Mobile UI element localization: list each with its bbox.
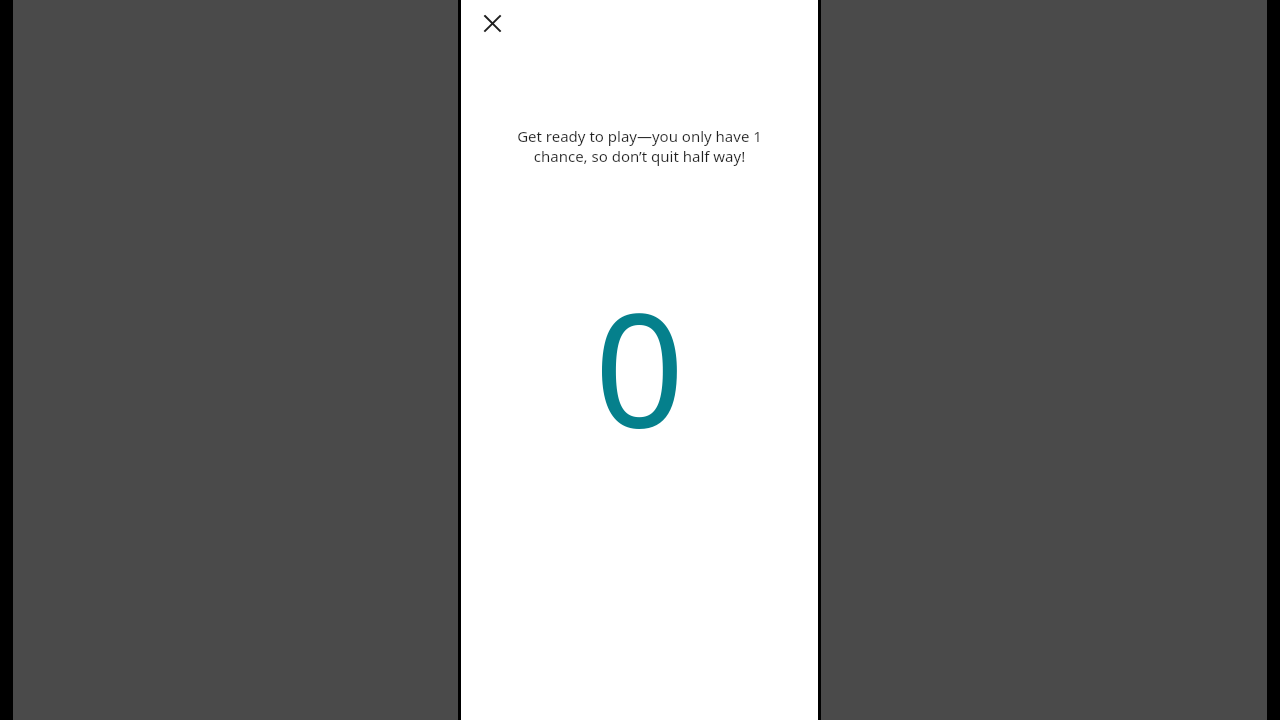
staticText: 0 xyxy=(594,258,685,464)
button[interactable]: Close xyxy=(470,1,514,45)
staticText: Get ready to play—you only have 1 chance… xyxy=(505,126,774,166)
